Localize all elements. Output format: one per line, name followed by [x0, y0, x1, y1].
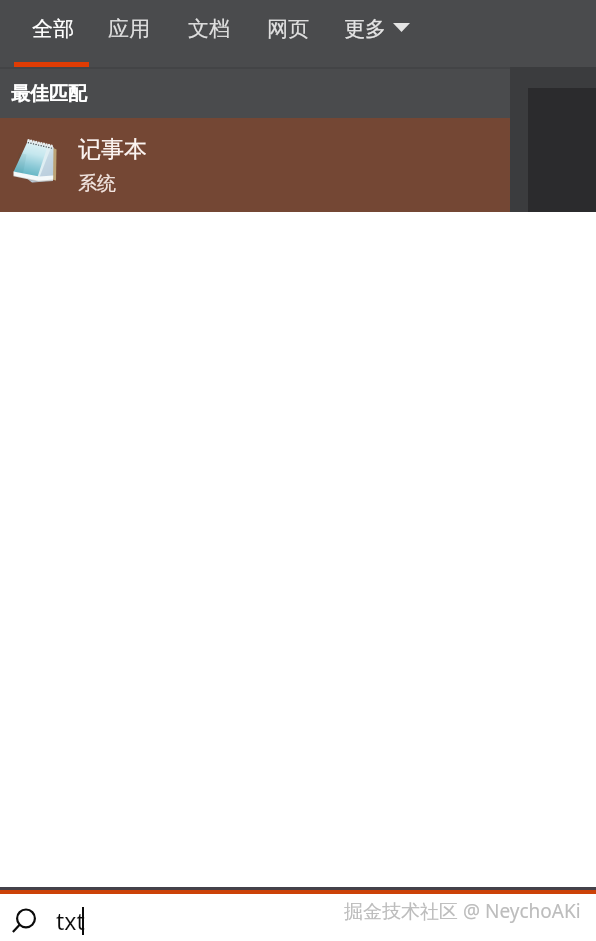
button[interactable]: 全部 — [32, 16, 74, 42]
staticText: 网页 — [267, 16, 309, 42]
staticText: 更多 — [344, 16, 386, 42]
button[interactable]: Search — [12, 908, 40, 938]
button[interactable]: 更多 — [344, 16, 410, 42]
staticText: txt — [56, 905, 85, 936]
button[interactable]: 网页 — [267, 16, 309, 42]
staticText: 掘金技术社区 @ NeychoAKi — [344, 898, 581, 924]
button[interactable]: 应用 — [108, 16, 150, 42]
button[interactable]: 文档 — [188, 16, 230, 42]
staticText: 文档 — [188, 16, 230, 42]
staticText: 记事本 — [78, 135, 147, 164]
staticText: 系统 — [78, 172, 116, 196]
staticText: 全部 — [32, 16, 74, 42]
staticText: 最佳匹配 — [11, 82, 87, 106]
button[interactable]: 记事本 — [0, 118, 510, 212]
staticText: 应用 — [108, 16, 150, 42]
